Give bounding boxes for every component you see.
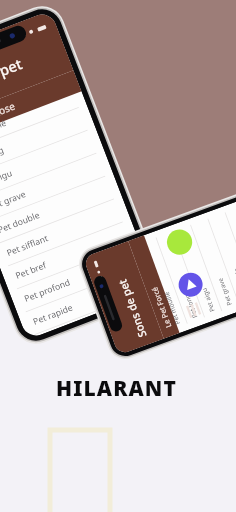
button[interactable]: Hilarant promotional screen — [0, 0, 236, 512]
